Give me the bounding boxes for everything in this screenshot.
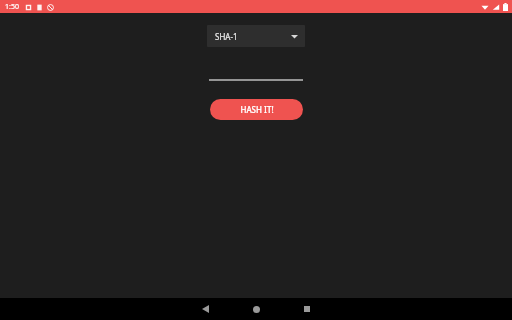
button[interactable]: Back — [188, 298, 222, 320]
staticText: 1:50 — [5, 2, 19, 12]
button[interactable]: HASH IT! — [210, 99, 303, 120]
button[interactable]: SHA-1 — [207, 25, 305, 47]
button[interactable]: Recent apps — [290, 298, 324, 320]
staticText: SHA-1 — [215, 31, 238, 42]
button[interactable]: Home — [239, 298, 273, 320]
button[interactable] — [209, 65, 303, 81]
staticText: HASH IT! — [240, 104, 274, 115]
